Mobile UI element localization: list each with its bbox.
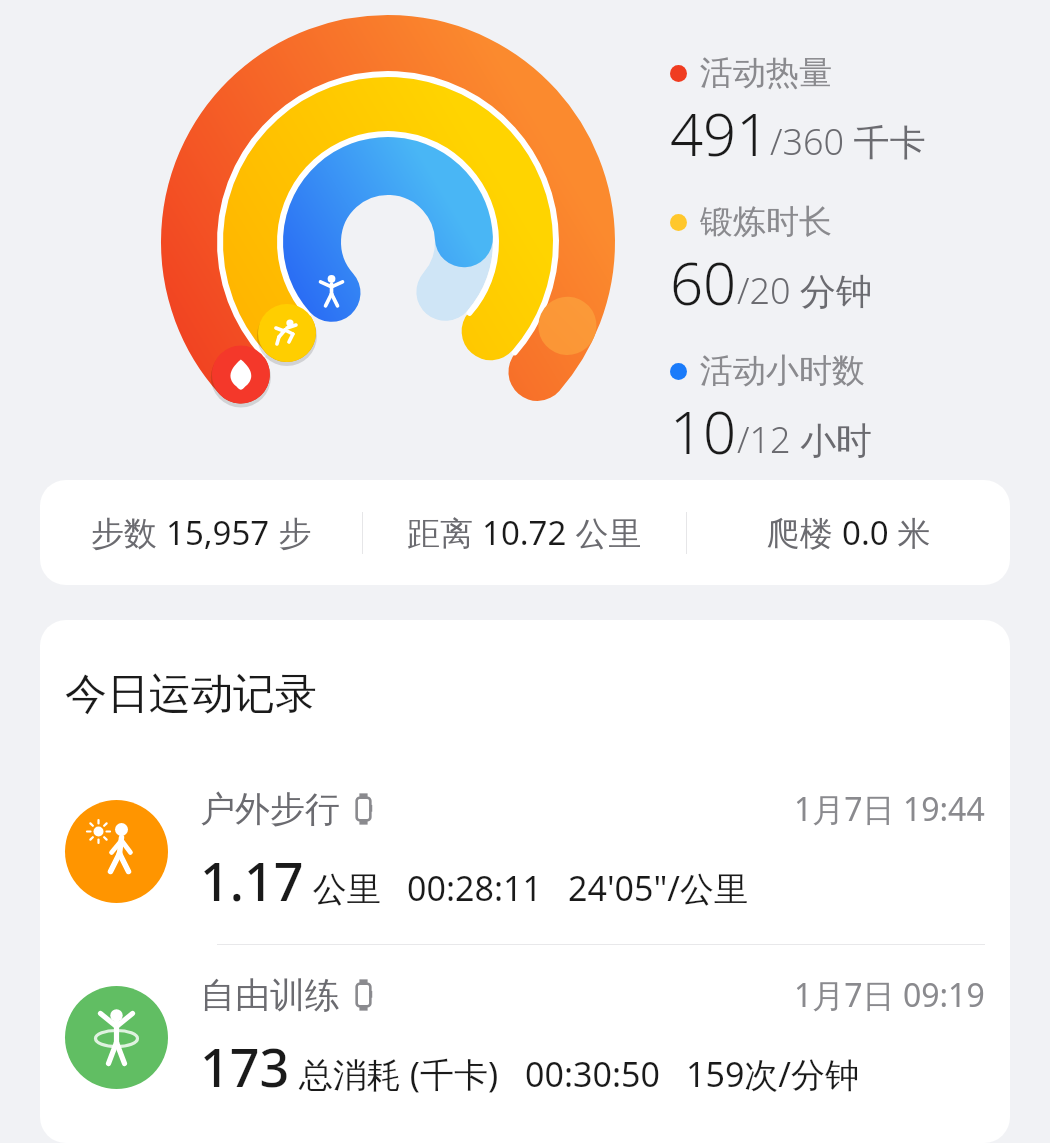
- staticText: 10.72: [482, 510, 567, 555]
- staticText: 公里: [567, 510, 642, 555]
- staticText: 00:28:11: [407, 865, 542, 911]
- staticText: 距离: [407, 510, 482, 555]
- staticText: 0.0: [842, 510, 889, 555]
- staticText: 活动小时数: [700, 350, 865, 392]
- staticText: 活动热量: [700, 52, 832, 94]
- staticText: /20 分钟: [737, 266, 872, 315]
- button[interactable]: 步数: [40, 480, 1010, 585]
- button[interactable]: 距离: [363, 480, 686, 585]
- staticText: 1月7日 19:44: [794, 787, 985, 831]
- staticText: 491: [670, 94, 770, 173]
- staticText: 步: [270, 510, 312, 555]
- staticText: 1.17: [200, 845, 304, 916]
- staticText: 10: [670, 392, 737, 471]
- button[interactable]: 活动小时数: [670, 350, 872, 471]
- staticText: 步数: [91, 510, 166, 555]
- staticText: 24'05"/公里: [568, 865, 748, 911]
- staticText: 总消耗 (千卡): [290, 1051, 499, 1097]
- staticText: 自由训练: [200, 973, 340, 1017]
- staticText: /12 小时: [737, 415, 872, 464]
- staticText: 爬楼: [767, 510, 842, 555]
- staticText: 173: [200, 1031, 290, 1102]
- button[interactable]: 步数: [40, 480, 362, 585]
- button[interactable]: 爬楼: [687, 480, 1010, 585]
- button[interactable]: 锻炼时长: [670, 201, 872, 322]
- staticText: 00:30:50: [525, 1051, 660, 1097]
- staticText: 锻炼时长: [700, 201, 832, 243]
- button[interactable]: 户外步行: [40, 759, 1010, 944]
- staticText: /360 千卡: [770, 117, 926, 166]
- staticText: 户外步行: [200, 787, 340, 831]
- staticText: 米: [889, 510, 931, 555]
- staticText: 60: [670, 243, 737, 322]
- button[interactable]: 活动热量: [670, 52, 926, 173]
- staticText: 1月7日 09:19: [794, 973, 985, 1017]
- button[interactable]: 自由训练: [40, 945, 1010, 1130]
- staticText: 公里: [304, 865, 381, 911]
- staticText: 今日运动记录: [65, 668, 317, 721]
- staticText: 15,957: [166, 510, 270, 555]
- staticText: 159次/分钟: [686, 1051, 859, 1097]
